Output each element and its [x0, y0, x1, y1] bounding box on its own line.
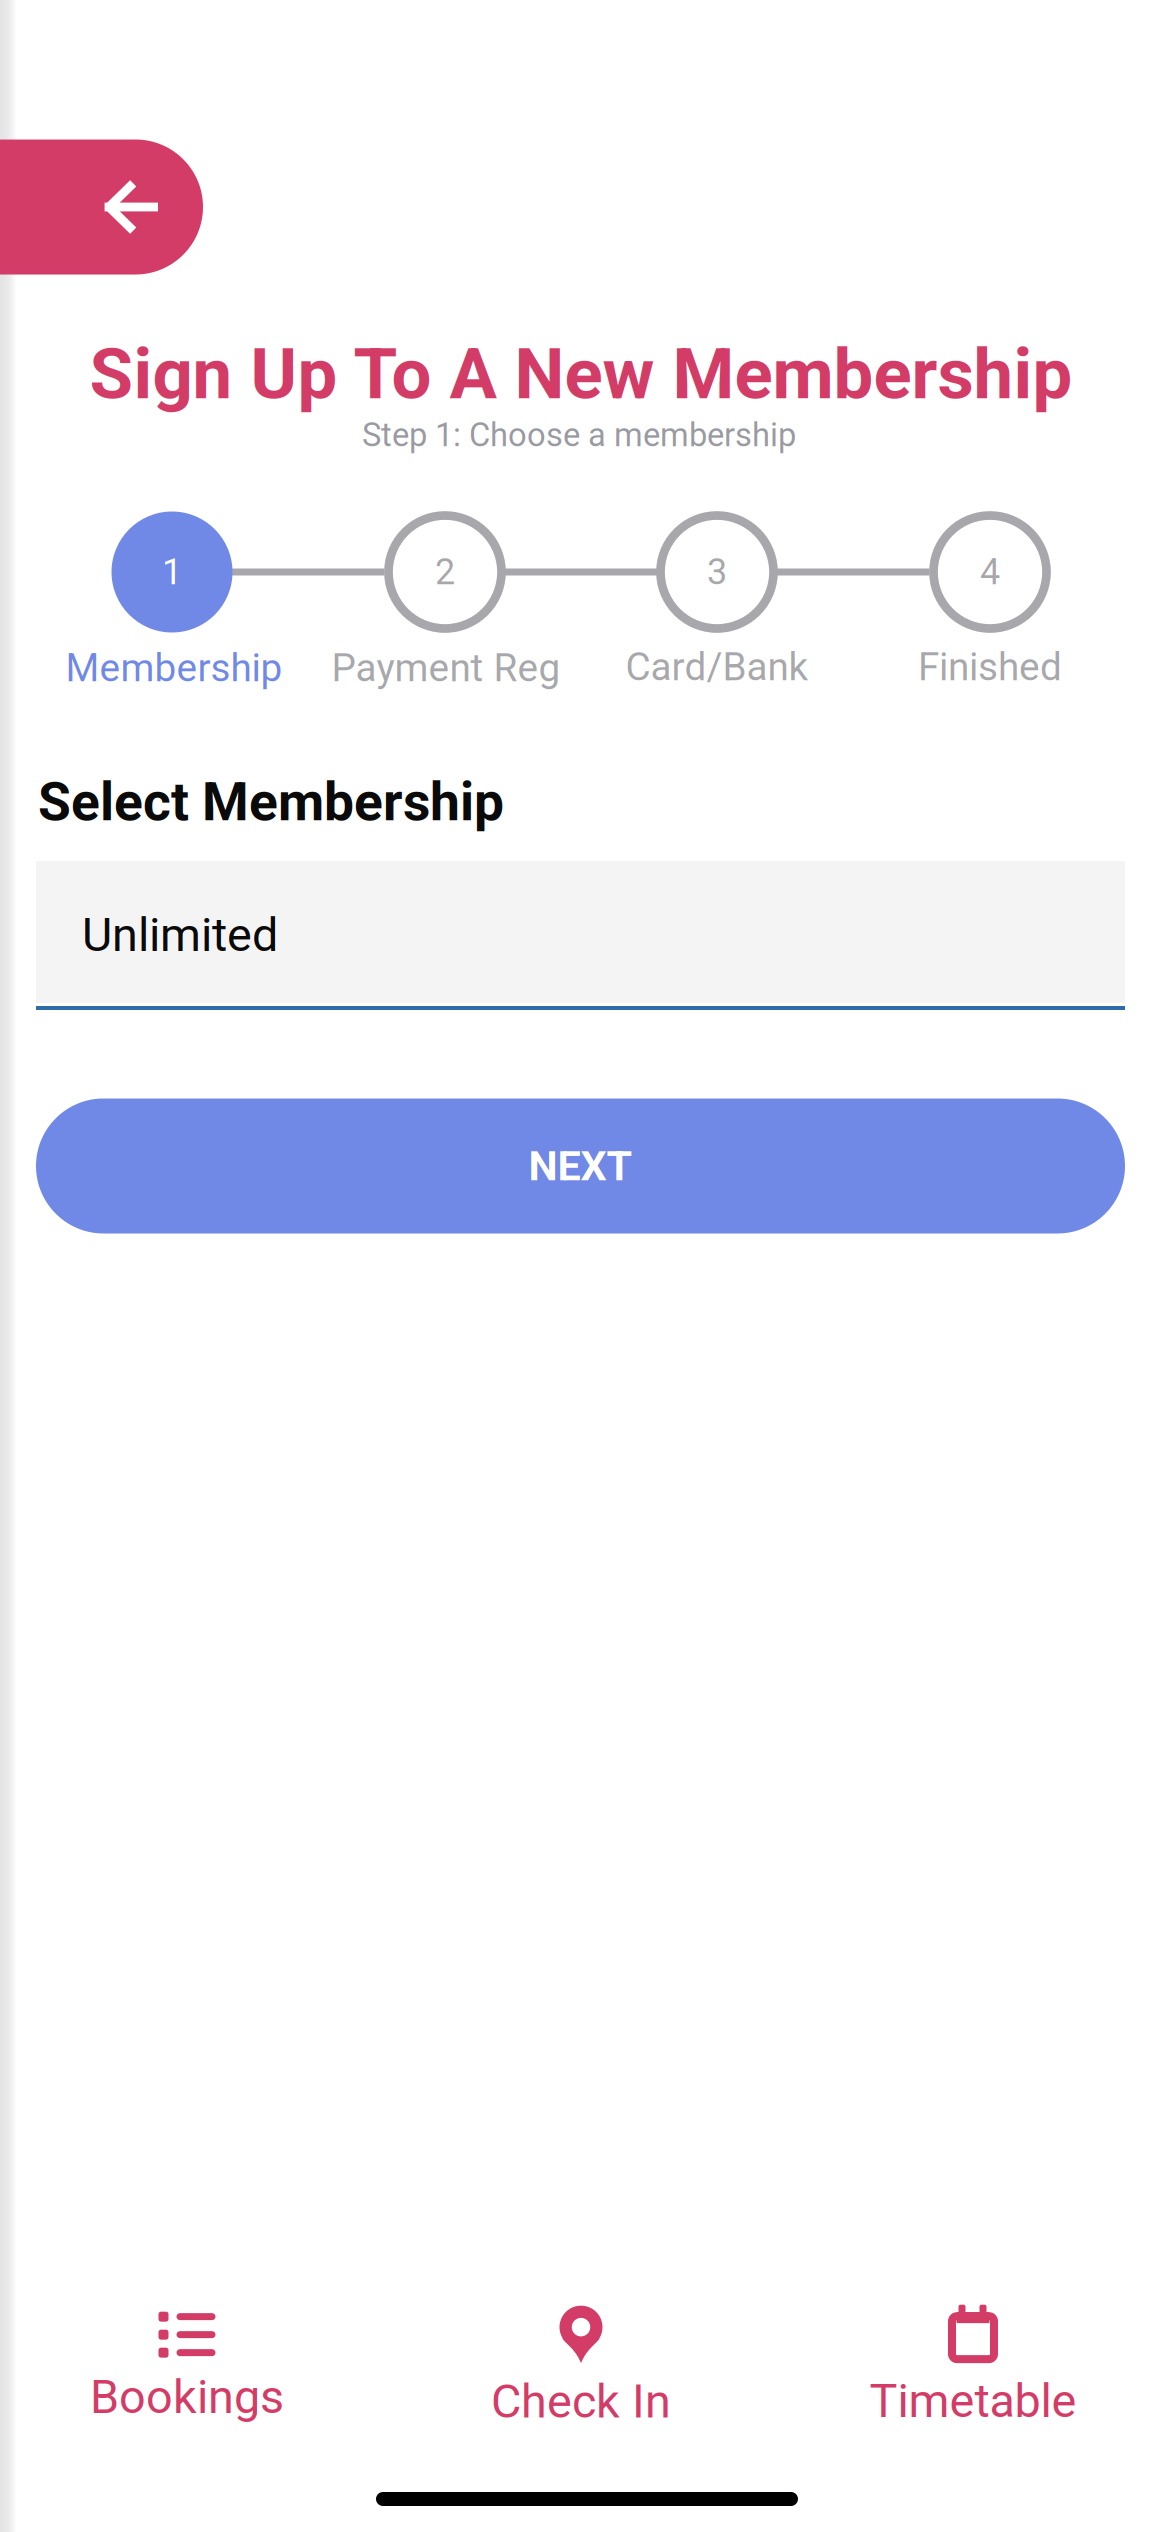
button[interactable]: Timetable: [778, 2292, 1168, 2442]
staticText: 2: [435, 551, 455, 593]
staticText: Unlimited: [82, 908, 278, 962]
button[interactable]: Check In: [386, 2292, 776, 2442]
staticText: 3: [707, 551, 727, 593]
staticText: 4: [980, 551, 1000, 593]
button[interactable]: Bookings: [0, 2293, 382, 2443]
staticText: Check In: [491, 2374, 671, 2429]
button[interactable]: Back: [0, 139, 203, 274]
staticText: Membership: [65, 645, 282, 691]
staticText: NEXT: [528, 1142, 632, 1190]
staticText: Payment Reg: [331, 645, 560, 691]
staticText: Select Membership: [38, 771, 504, 833]
button[interactable]: NEXT: [36, 1098, 1125, 1233]
staticText: 1: [162, 551, 182, 593]
staticText: Card/Bank: [625, 644, 808, 690]
staticText: Bookings: [90, 2370, 284, 2424]
staticText: Sign Up To A New Membership: [89, 333, 1072, 415]
staticText: Step 1: Choose a membership: [362, 416, 796, 454]
staticText: Timetable: [869, 2374, 1076, 2428]
staticText: Finished: [918, 644, 1062, 690]
button[interactable]: Unlimited: [36, 861, 1125, 1010]
